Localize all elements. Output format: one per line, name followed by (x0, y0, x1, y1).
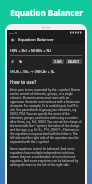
staticText: Some equations cannot be balanced. And s… (10, 147, 82, 167)
button[interactable]: BALANCE (66, 59, 82, 64)
staticText: H3N + Br2 = NH4Br + N2 (10, 48, 51, 53)
staticText: Equation Balancer (10, 7, 83, 18)
staticText: 8H3N + 3Br2 → 6NH4Br + N2 (10, 69, 55, 74)
staticText: Equation Balancer (18, 37, 54, 43)
staticText: 9:41 (9, 31, 14, 34)
button[interactable]: Back (10, 37, 16, 43)
staticText: How to use? (10, 79, 37, 85)
staticText: BALANCE (68, 60, 80, 63)
button[interactable]: Insert symbol (10, 59, 15, 64)
button[interactable]: Copy result (18, 59, 23, 64)
staticText: Enter your terms separated by the + symb… (10, 88, 82, 144)
staticText: CLEAR (54, 60, 62, 63)
button[interactable]: CLEAR (52, 59, 64, 64)
